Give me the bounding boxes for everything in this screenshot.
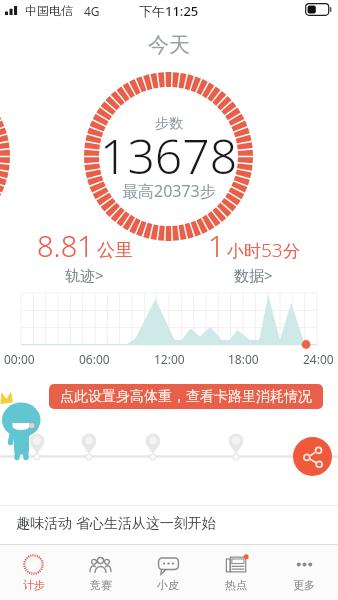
staticText: 数据> <box>234 265 273 285</box>
staticText: 12:00 <box>154 351 185 367</box>
staticText: 1 <box>208 226 225 265</box>
staticText: 8.81 <box>37 226 94 265</box>
staticText: 24:00 <box>303 351 334 367</box>
staticText: 轨迹> <box>65 265 104 285</box>
button[interactable]: Share <box>293 437 332 476</box>
button[interactable]: 点此设置身高体重，查看卡路里消耗情况 <box>49 384 323 409</box>
button[interactable]: 计步 <box>0 545 67 600</box>
button[interactable]: 8.81 <box>0 226 169 285</box>
staticText: 06:00 <box>79 351 110 367</box>
staticText: 13678 <box>100 123 238 188</box>
button[interactable]: 竞赛 <box>67 545 134 600</box>
staticText: 18:00 <box>228 351 259 367</box>
button[interactable]: 热点 <box>202 545 270 600</box>
staticText: 点此设置身高体重，查看卡路里消耗情况 <box>60 388 312 406</box>
staticText: 下午11:25 <box>139 2 199 20</box>
staticText: 00:00 <box>4 351 35 367</box>
button[interactable]: 1 <box>169 226 338 285</box>
staticText: 公里 <box>97 239 133 262</box>
staticText: 热点 <box>225 578 247 592</box>
button[interactable]: 小皮 <box>134 545 202 600</box>
staticText: 趣味活动 省心生活从这一刻开始 <box>16 513 216 532</box>
staticText: 小时 <box>227 241 261 262</box>
staticText: 分 <box>283 241 300 262</box>
staticText: 竞赛 <box>90 578 112 592</box>
staticText: 更多 <box>293 578 315 592</box>
staticText: 计步 <box>23 578 45 592</box>
staticText: 中国电信 <box>25 3 73 18</box>
staticText: 最高20373步 <box>122 180 216 202</box>
staticText: 53 <box>261 237 283 263</box>
staticText: 步数 <box>155 115 183 133</box>
staticText: 小皮 <box>157 578 179 592</box>
button[interactable]: 趣味活动 省心生活从这一刻开始 <box>0 505 338 544</box>
staticText: 今天 <box>148 32 190 58</box>
staticText: 4G <box>84 3 100 19</box>
button[interactable]: 更多 <box>270 545 338 600</box>
